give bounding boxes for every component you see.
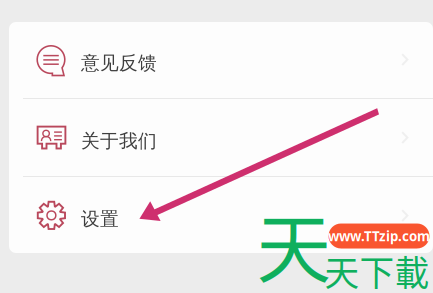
button[interactable]: 意见反馈 (9, 21, 433, 98)
staticText: 关于我们 (81, 129, 157, 152)
staticText: 天 (256, 190, 331, 293)
staticText: www.TTzip.com (328, 227, 430, 245)
staticText: 设置 (81, 207, 119, 230)
button[interactable]: 关于我们 (9, 99, 433, 176)
button[interactable]: 设置 (9, 177, 433, 254)
staticText: 意见反馈 (81, 51, 157, 74)
staticText: 天下載 (324, 246, 429, 293)
